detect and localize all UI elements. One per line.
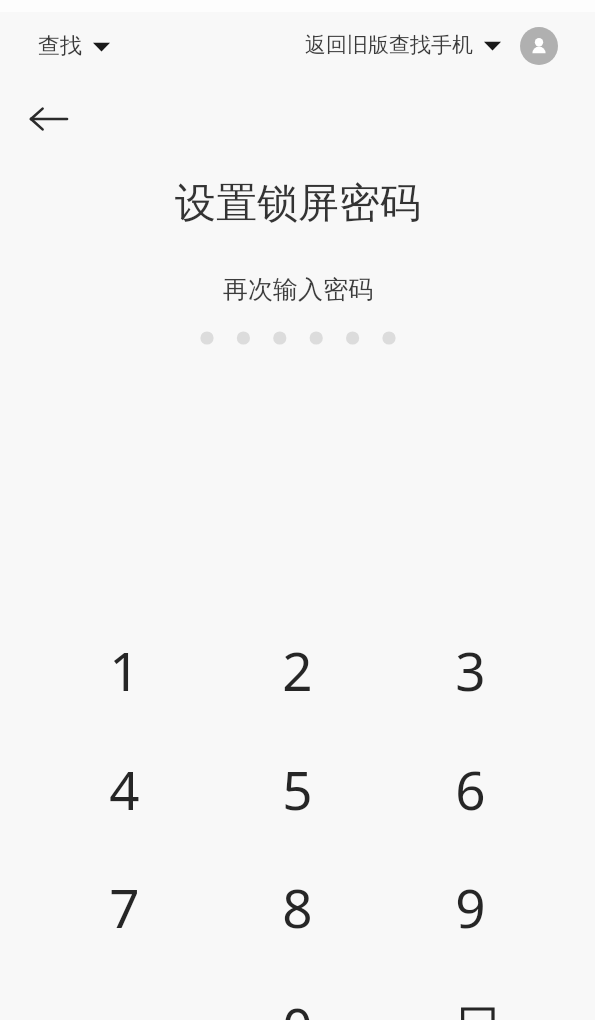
- button[interactable]: Account: [520, 27, 558, 65]
- button[interactable]: 查找: [34, 26, 114, 66]
- staticText: 返回旧版查找手机: [305, 32, 473, 58]
- staticText: 7: [109, 871, 140, 943]
- button[interactable]: 返回旧版查找手机: [301, 26, 505, 64]
- button[interactable]: 1: [69, 622, 179, 718]
- button[interactable]: Back: [22, 92, 76, 146]
- button[interactable]: 6: [415, 741, 525, 837]
- button[interactable]: 5: [242, 741, 352, 837]
- button[interactable]: 0: [242, 978, 352, 1020]
- button[interactable]: Delete: [426, 982, 514, 1020]
- staticText: 2: [282, 634, 313, 706]
- staticText: 0: [282, 990, 313, 1020]
- staticText: 1: [109, 634, 140, 706]
- staticText: 再次输入密码: [223, 274, 373, 305]
- staticText: 5: [282, 753, 313, 825]
- button[interactable]: 8: [242, 859, 352, 955]
- staticText: 查找: [38, 32, 82, 60]
- button[interactable]: 4: [69, 741, 179, 837]
- staticText: 6: [455, 753, 486, 825]
- button[interactable]: 2: [242, 622, 352, 718]
- staticText: 9: [455, 871, 486, 943]
- staticText: 4: [109, 753, 140, 825]
- staticText: 3: [455, 634, 486, 706]
- staticText: 8: [282, 871, 313, 943]
- button[interactable]: 9: [415, 859, 525, 955]
- button[interactable]: 7: [69, 859, 179, 955]
- button[interactable]: 3: [415, 622, 525, 718]
- staticText: 设置锁屏密码: [175, 178, 421, 230]
